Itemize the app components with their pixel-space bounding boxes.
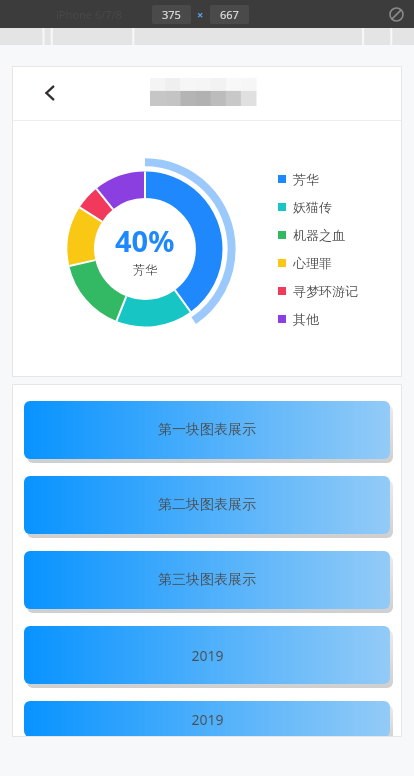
button[interactable]: 心理罪 [278, 255, 332, 271]
staticText: 2019 [191, 710, 224, 729]
button[interactable]: Back [32, 75, 68, 111]
staticText: 第一块图表展示 [158, 421, 256, 439]
staticText: 375 [162, 7, 181, 22]
button[interactable]: 375 [162, 7, 181, 22]
staticText: 心理罪 [293, 255, 332, 271]
staticText: 40% [115, 221, 175, 260]
staticText: 芳华 [133, 262, 157, 277]
staticText: 寻梦环游记 [293, 283, 358, 299]
staticText: 其他 [293, 311, 319, 327]
button[interactable]: 芳华 [278, 171, 319, 187]
staticText: 妖猫传 [293, 199, 332, 215]
button[interactable]: 第三块图表展示 [24, 551, 390, 609]
staticText: 2019 [191, 646, 224, 665]
button[interactable]: 667 [220, 7, 239, 22]
staticText: iPhone 6/7/8 [56, 7, 122, 22]
button[interactable]: Disable network throttling [382, 0, 410, 28]
button[interactable]: 2019 [24, 626, 390, 684]
button[interactable]: 第一块图表展示 [24, 401, 390, 459]
button[interactable]: 妖猫传 [278, 199, 332, 215]
button[interactable]: 其他 [278, 311, 319, 327]
staticText: × [197, 7, 204, 22]
button[interactable]: 寻梦环游记 [278, 283, 358, 299]
staticText: 667 [220, 7, 239, 22]
button[interactable]: 2019 [24, 701, 390, 737]
staticText: 芳华 [293, 171, 319, 187]
staticText: 机器之血 [293, 227, 345, 243]
staticText: 第三块图表展示 [158, 571, 256, 589]
staticText: 第二块图表展示 [158, 496, 256, 514]
button[interactable]: 机器之血 [278, 227, 345, 243]
button[interactable]: 第二块图表展示 [24, 476, 390, 534]
